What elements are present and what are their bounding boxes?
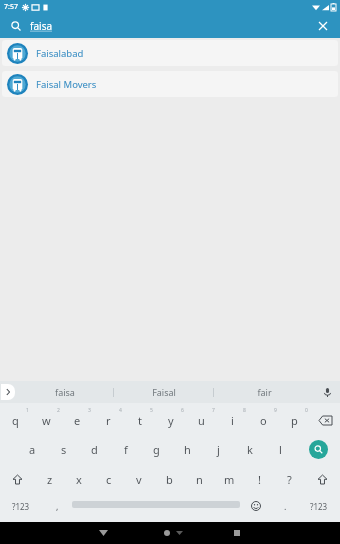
button[interactable]: k — [234, 435, 265, 463]
staticText: 8 — [243, 407, 246, 414]
staticText: 7 — [212, 407, 215, 414]
button[interactable]: Search — [296, 434, 340, 464]
button[interactable]: Faisal — [114, 381, 214, 403]
button[interactable]: s — [48, 435, 79, 463]
staticText: 0 — [305, 407, 308, 414]
button[interactable]: Emoji — [240, 494, 272, 518]
staticText: Faisal — [152, 386, 176, 398]
button[interactable]: Home — [151, 522, 195, 544]
staticText: p — [291, 413, 298, 428]
staticText: r — [106, 413, 111, 428]
button[interactable]: l — [265, 435, 296, 463]
staticText: o — [260, 413, 267, 428]
button[interactable]: ?123 — [0, 494, 42, 518]
button[interactable]: u — [186, 406, 217, 434]
staticText: n — [196, 472, 203, 487]
button[interactable]: f — [110, 435, 141, 463]
staticText: 4 — [119, 407, 122, 414]
button[interactable]: Faisalabad — [2, 40, 338, 66]
staticText: fair — [257, 386, 272, 398]
staticText: 3 — [88, 407, 91, 414]
button[interactable]: fair — [214, 381, 314, 403]
button[interactable]: Shift — [0, 464, 35, 494]
button[interactable]: q — [0, 406, 31, 434]
staticText: 6 — [181, 407, 184, 414]
button[interactable]: Clear — [314, 17, 332, 35]
staticText: ? — [287, 472, 292, 487]
button[interactable]: Backspace — [310, 406, 340, 434]
button[interactable]: , — [42, 494, 72, 518]
staticText: i — [231, 413, 234, 428]
staticText: 1 — [26, 407, 29, 414]
button[interactable]: . — [272, 494, 298, 518]
staticText: h — [184, 442, 191, 457]
staticText: 2 — [57, 407, 60, 414]
button[interactable]: More suggestions — [1, 384, 15, 400]
staticText: Faisalabad — [36, 47, 84, 60]
button[interactable]: j — [203, 435, 234, 463]
button[interactable]: Back — [81, 522, 125, 544]
button[interactable]: d — [79, 435, 110, 463]
button[interactable]: ! — [244, 465, 274, 493]
button[interactable]: v — [124, 465, 154, 493]
staticText: ?123 — [310, 501, 328, 512]
staticText: f — [124, 442, 128, 457]
staticText: l — [279, 442, 282, 457]
button[interactable]: y — [155, 406, 186, 434]
button[interactable]: ?123 — [298, 494, 340, 518]
button[interactable]: Faisal Movers — [2, 71, 338, 97]
staticText: , — [56, 500, 59, 512]
button[interactable]: n — [184, 465, 214, 493]
button[interactable]: faisa — [30, 19, 314, 33]
staticText: v — [136, 472, 142, 487]
button[interactable]: Space — [72, 501, 240, 511]
staticText: e — [74, 413, 81, 428]
staticText: j — [217, 442, 220, 457]
button[interactable]: r — [93, 406, 124, 434]
staticText: g — [153, 442, 160, 457]
button[interactable]: w — [31, 406, 62, 434]
staticText: a — [29, 442, 36, 457]
staticText: t — [138, 413, 142, 428]
staticText: ?123 — [12, 501, 30, 512]
staticText: . — [284, 500, 287, 512]
staticText: u — [198, 413, 205, 428]
button[interactable]: t — [124, 406, 155, 434]
button[interactable]: h — [172, 435, 203, 463]
button[interactable]: Search — [8, 18, 24, 34]
staticText: m — [224, 472, 235, 487]
button[interactable]: b — [154, 465, 184, 493]
staticText: c — [106, 472, 112, 487]
button[interactable]: m — [214, 465, 244, 493]
button[interactable]: ? — [274, 465, 304, 493]
button[interactable]: g — [141, 435, 172, 463]
staticText: b — [166, 472, 173, 487]
button[interactable]: o — [248, 406, 279, 434]
staticText: s — [61, 442, 67, 457]
staticText: w — [42, 413, 51, 428]
staticText: d — [91, 442, 98, 457]
staticText: y — [168, 413, 174, 428]
staticText: 5 — [150, 407, 153, 414]
staticText: ! — [258, 472, 261, 487]
button[interactable]: a — [16, 435, 48, 463]
button[interactable]: faisa — [15, 381, 114, 403]
button[interactable]: p — [279, 406, 310, 434]
staticText: q — [12, 413, 19, 428]
staticText: 9 — [274, 407, 277, 414]
button[interactable]: Shift — [304, 464, 340, 494]
button[interactable]: e — [62, 406, 93, 434]
button[interactable]: Voice input — [314, 381, 340, 403]
button[interactable]: c — [94, 465, 124, 493]
button[interactable]: Recents — [215, 522, 259, 544]
staticText: z — [47, 472, 53, 487]
staticText: k — [247, 442, 253, 457]
staticText: Faisal Movers — [36, 78, 97, 91]
staticText: 7:57 — [4, 2, 18, 12]
staticText: x — [76, 472, 82, 487]
button[interactable]: i — [217, 406, 248, 434]
staticText: faisa — [55, 386, 75, 398]
button[interactable]: z — [35, 465, 64, 493]
staticText: faisa — [30, 19, 53, 33]
button[interactable]: x — [64, 465, 94, 493]
